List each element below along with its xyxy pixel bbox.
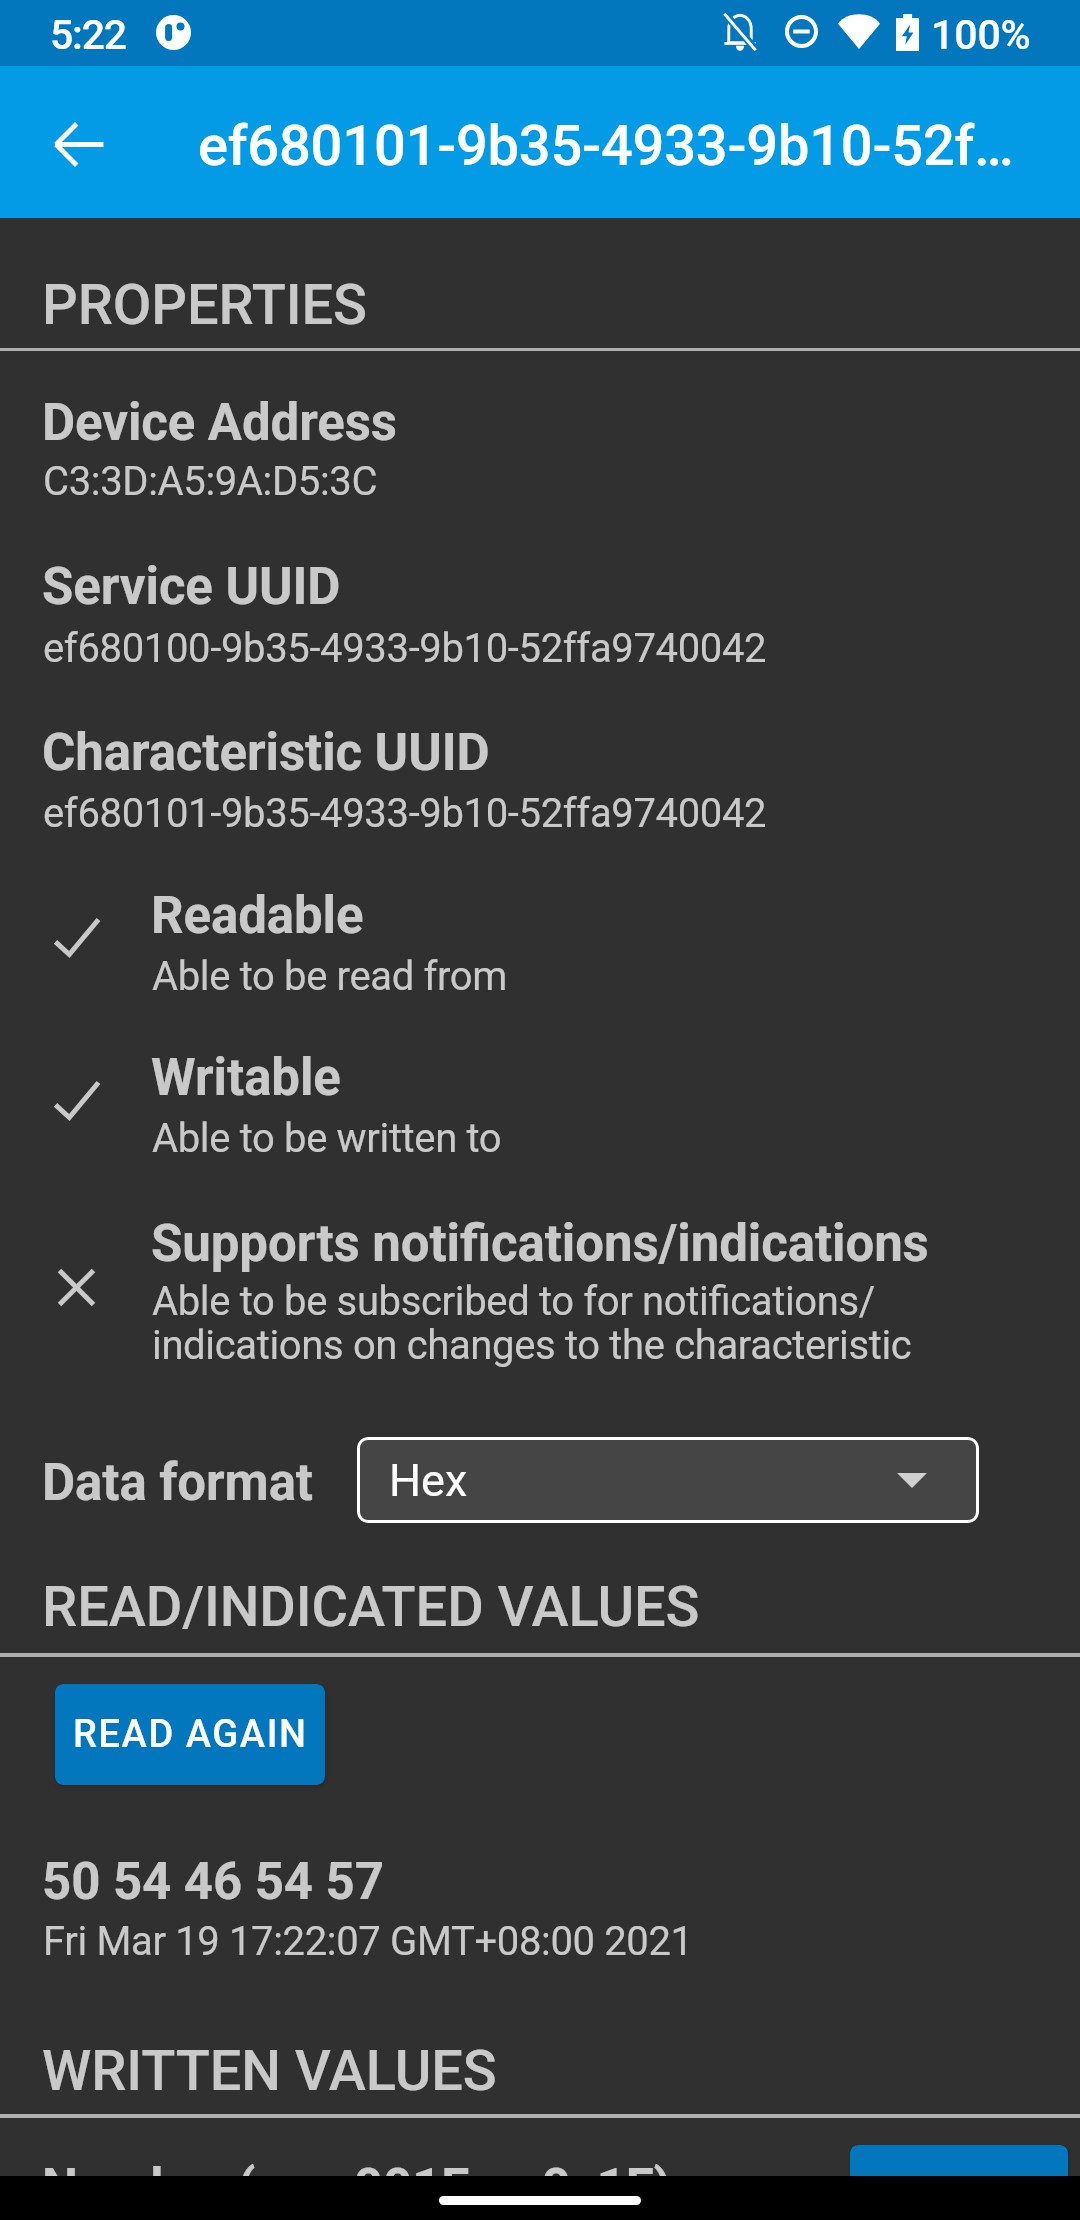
staticText: Characteristic UUID	[42, 723, 490, 783]
staticText: Service UUID	[42, 557, 341, 617]
staticText: READ AGAIN	[73, 1712, 308, 1757]
button[interactable]: READ AGAIN	[55, 1684, 325, 1785]
staticText: 5:22	[50, 11, 126, 59]
staticText: indications on changes to the characteri…	[152, 1322, 912, 1369]
staticText: C3:3D:A5:9A:D5:3C	[43, 458, 378, 505]
staticText: Supports notifications/indications	[151, 1214, 929, 1274]
staticText: ef680100-9b35-4933-9b10-52ffa9740042	[43, 625, 767, 672]
staticText: Device Address	[42, 393, 397, 453]
staticText: Able to be subscribed to for notificatio…	[152, 1278, 875, 1325]
staticText: ef680101-9b35-4933-9b10-52ffa9740042	[43, 790, 767, 837]
button[interactable]: WRITE	[850, 2145, 1068, 2220]
staticText: Fri Mar 19 17:22:07 GMT+08:00 2021	[43, 1918, 693, 1965]
button[interactable]: Hex	[357, 1437, 979, 1523]
staticText: READ/INDICATED VALUES	[42, 1574, 700, 1640]
staticText: Writable	[151, 1048, 341, 1108]
staticText: WRITTEN VALUES	[42, 2038, 497, 2104]
staticText: Hex	[389, 1454, 468, 1507]
staticText: Number (e.g. 001F or 0x1F)	[42, 2158, 672, 2218]
staticText: 100%	[931, 11, 1031, 59]
staticText: ef680101-9b35-4933-9b10-52ffa9740042	[198, 113, 1018, 179]
staticText: Able to be written to	[152, 1115, 502, 1162]
staticText: PROPERTIES	[42, 272, 367, 338]
staticText: Able to be read from	[152, 953, 508, 1000]
staticText: Readable	[151, 886, 364, 946]
staticText: 50 54 46 54 57	[42, 1852, 384, 1912]
staticText: Data format	[42, 1453, 314, 1513]
staticText: WRITE	[899, 2173, 1020, 2218]
button[interactable]: Navigate up	[31, 96, 127, 192]
